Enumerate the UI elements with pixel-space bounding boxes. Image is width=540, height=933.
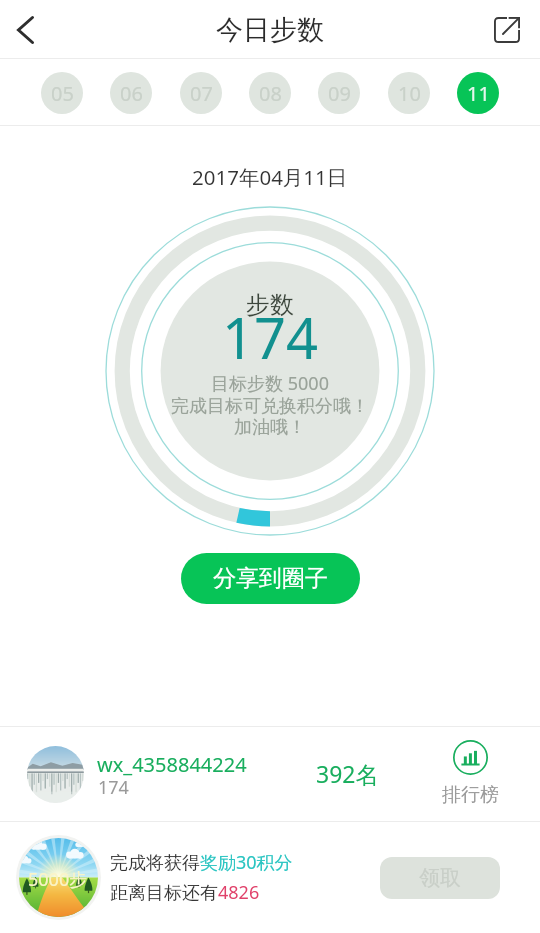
staticText: 2017年04月11日: [192, 163, 348, 191]
staticText: 排行榜: [442, 783, 499, 807]
staticText: 08: [259, 80, 282, 107]
staticText: 今日步数: [216, 13, 324, 47]
staticText: 05: [51, 80, 74, 107]
staticText: 目标步数 5000 完成目标可兑换积分哦！ 加油哦！: [171, 371, 369, 438]
staticText: 392名: [316, 758, 379, 789]
staticText: 完成将获得奖励30积分: [110, 850, 293, 875]
button[interactable]: Share: [488, 0, 540, 59]
button[interactable]: 领取: [380, 857, 500, 899]
button[interactable]: 分享到圈子: [181, 553, 360, 604]
button[interactable]: 11: [457, 72, 499, 114]
staticText: 步数: [246, 290, 294, 320]
button[interactable]: Back: [0, 0, 50, 59]
button[interactable]: 09: [318, 72, 360, 114]
button[interactable]: 07: [180, 72, 222, 114]
button[interactable]: 06: [110, 72, 152, 114]
button[interactable]: 排行榜: [435, 727, 505, 821]
staticText: wx_4358844224: [97, 751, 247, 778]
staticText: 09: [328, 80, 351, 107]
button[interactable]: 10: [388, 72, 430, 114]
staticText: 07: [190, 80, 213, 107]
staticText: 10: [398, 80, 421, 107]
staticText: 11: [467, 80, 490, 107]
staticText: 领取: [419, 865, 461, 891]
button[interactable]: 05: [41, 72, 83, 114]
staticText: 分享到圈子: [213, 564, 328, 593]
button[interactable]: 08: [249, 72, 291, 114]
staticText: 174: [222, 299, 319, 375]
staticText: 5000步: [28, 867, 88, 892]
button[interactable]: wx_4358844224: [0, 727, 540, 821]
staticText: 174: [98, 775, 129, 800]
staticText: 06: [120, 80, 143, 107]
staticText: 距离目标还有4826: [110, 880, 260, 905]
